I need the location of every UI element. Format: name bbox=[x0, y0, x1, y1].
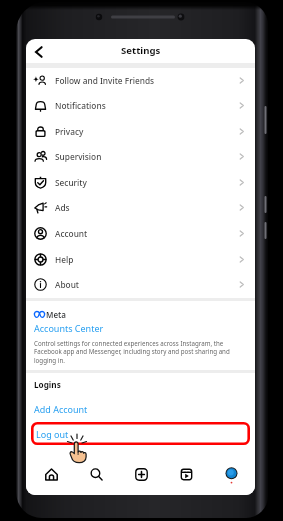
staticText: About bbox=[55, 279, 80, 290]
staticText: Privacy bbox=[55, 126, 84, 137]
staticText: Accounts Center bbox=[34, 322, 104, 334]
button[interactable]: About bbox=[26, 271, 255, 297]
staticText: Account bbox=[55, 228, 88, 239]
staticText: Follow and Invite Friends bbox=[55, 75, 155, 86]
staticText: Settings bbox=[121, 44, 161, 57]
button[interactable]: Notifications bbox=[26, 92, 255, 118]
staticText: Ads bbox=[55, 202, 70, 213]
button[interactable]: Help bbox=[26, 246, 255, 272]
button[interactable]: Add Account bbox=[34, 403, 88, 415]
staticText: Meta bbox=[46, 309, 67, 320]
button[interactable]: Privacy bbox=[26, 118, 255, 144]
button[interactable]: Ads bbox=[26, 194, 255, 220]
button[interactable]: Log out bbox=[31, 422, 250, 445]
button[interactable]: Create bbox=[128, 461, 154, 487]
button[interactable]: Account bbox=[26, 220, 255, 246]
button[interactable]: Search bbox=[83, 461, 109, 487]
staticText: Notifications bbox=[55, 100, 106, 111]
button[interactable]: Accounts Center bbox=[34, 322, 104, 334]
staticText: Log out bbox=[36, 428, 69, 440]
button[interactable]: Supervision bbox=[26, 143, 255, 169]
staticText: Add Account bbox=[34, 403, 88, 415]
staticText: Control settings for connected experienc… bbox=[34, 339, 240, 365]
staticText: Security bbox=[55, 177, 87, 188]
button[interactable]: Home bbox=[38, 461, 64, 487]
button[interactable]: Reels bbox=[173, 461, 199, 487]
staticText: Supervision bbox=[55, 151, 102, 162]
button[interactable]: Profile bbox=[218, 461, 244, 487]
button[interactable]: Back bbox=[29, 42, 49, 62]
button[interactable]: Follow and Invite Friends bbox=[26, 67, 255, 93]
button[interactable]: Security bbox=[26, 169, 255, 195]
staticText: Logins bbox=[34, 379, 61, 390]
staticText: Help bbox=[55, 254, 74, 265]
